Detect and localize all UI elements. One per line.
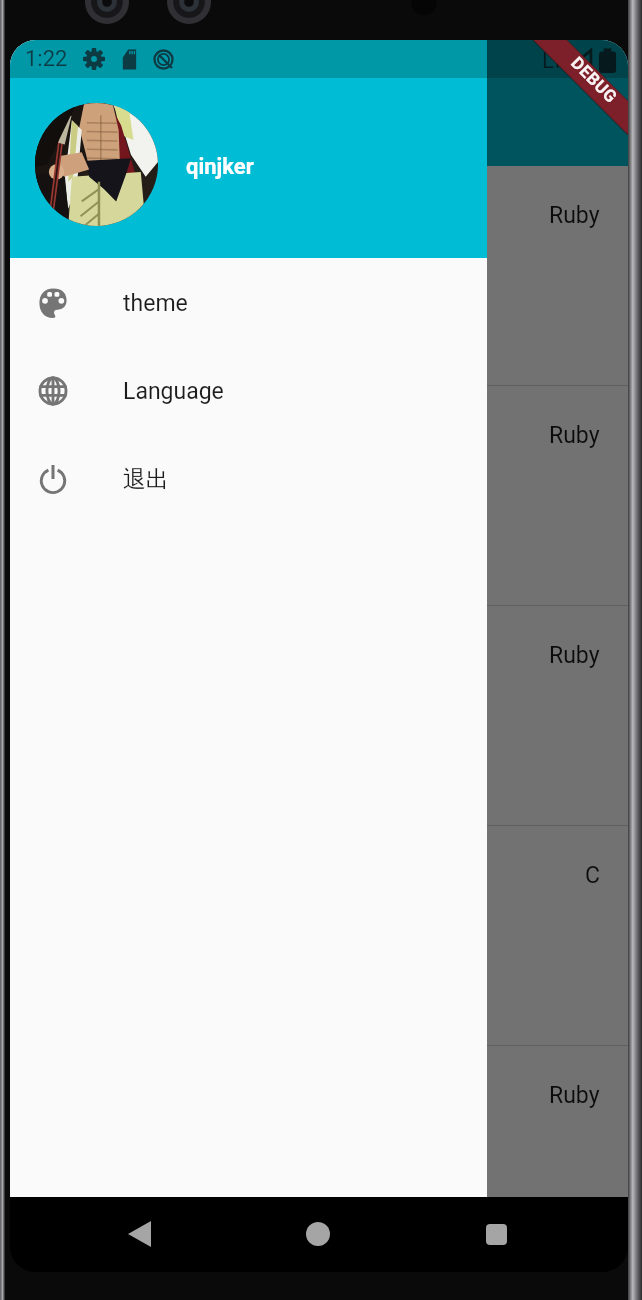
staticText: 退出 (123, 465, 169, 494)
staticText: Language (123, 378, 224, 405)
button[interactable]: Recent apps (461, 1199, 531, 1269)
button[interactable]: Theme (10, 259, 487, 347)
other: Theme (36, 286, 70, 320)
button[interactable]: Ruby (10, 386, 628, 606)
staticText: 1:22 (25, 46, 68, 72)
button[interactable]: Ruby (10, 166, 628, 386)
other: Exit (36, 462, 70, 496)
staticText: DEBUG (567, 53, 622, 107)
button[interactable]: C (10, 826, 628, 1046)
button[interactable]: Home (283, 1199, 353, 1269)
button[interactable]: Back (104, 1199, 174, 1269)
button[interactable]: Language (10, 347, 487, 435)
staticText: Ruby (549, 642, 600, 669)
button[interactable]: Ruby (10, 606, 628, 826)
staticText: Ruby (549, 1082, 600, 1109)
staticText: LTE (542, 48, 577, 74)
staticText: Ruby (549, 422, 600, 449)
other: Language (36, 374, 70, 408)
staticText: qinjker (186, 154, 254, 180)
staticText: theme (123, 290, 188, 317)
button[interactable]: Ruby (10, 1046, 628, 1197)
staticText: Ruby (549, 202, 600, 229)
staticText: C (585, 862, 600, 889)
button[interactable]: Exit (10, 435, 487, 523)
